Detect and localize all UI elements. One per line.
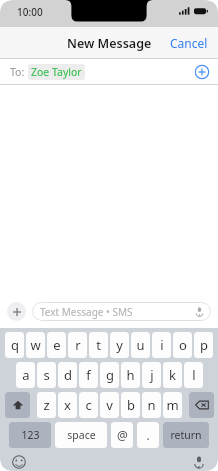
staticText: e (53, 336, 61, 354)
button[interactable]: z (37, 392, 56, 418)
staticText: New Message (67, 35, 152, 52)
staticText: x (64, 396, 71, 414)
staticText: k (169, 366, 176, 384)
staticText: return (170, 428, 202, 442)
staticText: space (67, 428, 96, 442)
staticText: h (126, 366, 135, 384)
staticText: y (116, 336, 123, 354)
staticText: o (179, 336, 187, 354)
staticText: q (11, 336, 19, 354)
button[interactable]: n (142, 392, 161, 418)
button[interactable]: u (131, 332, 150, 358)
staticText: 123 (21, 428, 40, 442)
button[interactable]: j (142, 362, 161, 388)
button[interactable]: k (163, 362, 182, 388)
button[interactable]: v (100, 392, 119, 418)
button[interactable]: @ (111, 422, 133, 448)
button[interactable]: Dictate (194, 306, 205, 317)
staticText: l (192, 366, 196, 384)
button[interactable]: i (152, 332, 171, 358)
staticText: r (75, 336, 81, 354)
staticText: a (22, 366, 30, 384)
button[interactable]: Add attachment (7, 302, 26, 321)
button[interactable]: m (163, 392, 182, 418)
button[interactable]: p (194, 332, 213, 358)
button[interactable]: c (79, 392, 98, 418)
button[interactable]: Backspace (189, 392, 214, 418)
staticText: n (147, 396, 156, 414)
staticText: b (127, 396, 135, 414)
staticText: 10:00 (17, 5, 43, 19)
button[interactable]: Emoji (12, 455, 26, 469)
staticText: j (150, 366, 154, 384)
button[interactable]: t (89, 332, 108, 358)
button[interactable]: f (79, 362, 98, 388)
staticText: Cancel (170, 35, 208, 51)
staticText: To: (10, 65, 25, 79)
button[interactable]: space (55, 422, 107, 448)
button[interactable]: g (100, 362, 119, 388)
button[interactable]: . (137, 422, 159, 448)
staticText: c (85, 396, 92, 414)
button[interactable]: x (58, 392, 77, 418)
button[interactable]: To: (0, 59, 218, 85)
staticText: p (200, 336, 208, 354)
staticText: w (30, 336, 41, 354)
button[interactable]: o (173, 332, 192, 358)
button[interactable]: h (121, 362, 140, 388)
button[interactable]: d (58, 362, 77, 388)
button[interactable]: r (68, 332, 87, 358)
staticText: @ (117, 427, 128, 443)
staticText: g (106, 366, 114, 384)
button[interactable]: Shift (5, 392, 30, 418)
button[interactable]: Voice input (192, 455, 206, 469)
staticText: u (136, 336, 145, 354)
button[interactable]: Add contact (194, 64, 210, 80)
button[interactable]: e (47, 332, 66, 358)
button[interactable]: Text Message • SMS (32, 302, 211, 321)
staticText: f (86, 366, 91, 384)
button[interactable]: y (110, 332, 129, 358)
button[interactable]: w (26, 332, 45, 358)
button[interactable]: 123 (9, 422, 51, 448)
staticText: s (43, 366, 50, 384)
staticText: Zoe Taylor (31, 65, 82, 79)
staticText: Text Message • SMS (40, 305, 133, 319)
staticText: . (146, 427, 150, 443)
button[interactable]: Cancel (160, 29, 218, 57)
button[interactable]: a (16, 362, 35, 388)
button[interactable]: s (37, 362, 56, 388)
staticText: z (43, 396, 50, 414)
staticText: d (64, 366, 72, 384)
button[interactable]: l (184, 362, 203, 388)
button[interactable]: q (5, 332, 24, 358)
staticText: i (160, 336, 164, 354)
button[interactable]: return (163, 422, 209, 448)
button[interactable]: b (121, 392, 140, 418)
staticText: m (166, 396, 179, 414)
staticText: t (96, 336, 101, 354)
staticText: v (106, 396, 113, 414)
